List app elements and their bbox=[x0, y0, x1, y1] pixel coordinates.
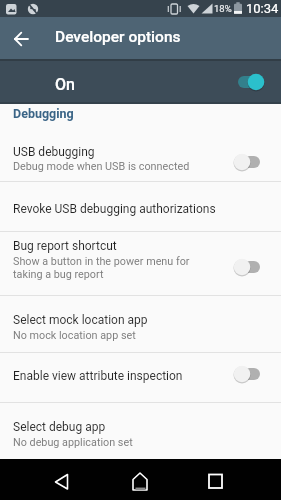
button[interactable] bbox=[232, 364, 262, 384]
button[interactable] bbox=[232, 257, 262, 277]
staticText: Developer options bbox=[55, 28, 181, 46]
button[interactable] bbox=[0, 231, 281, 295]
button[interactable] bbox=[0, 181, 281, 231]
button[interactable] bbox=[199, 466, 231, 494]
staticText: Select mock location app bbox=[13, 313, 148, 327]
staticText: Revoke USB debugging authorizations bbox=[13, 202, 216, 216]
staticText: taking a bug report bbox=[13, 268, 104, 281]
button[interactable] bbox=[0, 295, 281, 352]
button[interactable] bbox=[0, 352, 281, 402]
button[interactable] bbox=[47, 466, 79, 494]
staticText: Debugging bbox=[13, 106, 74, 121]
staticText: Bug report shortcut bbox=[13, 239, 117, 253]
button[interactable] bbox=[0, 402, 281, 459]
staticText: On bbox=[55, 75, 75, 94]
staticText: 18% bbox=[214, 3, 232, 14]
button[interactable] bbox=[0, 124, 281, 181]
staticText: Enable view attribute inspection bbox=[13, 369, 183, 383]
staticText: Show a button in the power menu for bbox=[13, 255, 190, 268]
staticText: No mock location app set bbox=[13, 329, 136, 342]
button[interactable] bbox=[0, 59, 281, 104]
staticText: Debug mode when USB is connected bbox=[13, 160, 190, 173]
button[interactable] bbox=[124, 466, 156, 494]
button[interactable] bbox=[232, 152, 262, 172]
button[interactable] bbox=[8, 27, 36, 51]
button[interactable] bbox=[236, 72, 266, 92]
staticText: No debug application set bbox=[13, 436, 133, 449]
staticText: Select debug app bbox=[13, 420, 106, 434]
staticText: USB debugging bbox=[13, 145, 95, 159]
staticText: 10:34 bbox=[246, 1, 279, 16]
